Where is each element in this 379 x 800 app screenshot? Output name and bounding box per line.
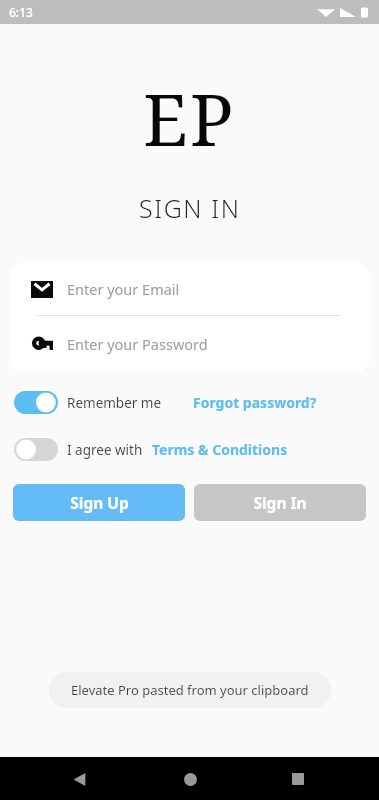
button[interactable]: Remember me toggle, on: [14, 391, 58, 414]
staticText: Terms & Conditions: [152, 440, 288, 459]
staticText: EP: [143, 69, 236, 167]
button[interactable]: Terms & Conditions: [152, 436, 288, 463]
button[interactable]: Forgot password?: [193, 389, 317, 416]
staticText: Remember me: [67, 394, 162, 412]
button[interactable]: Enter your Password: [10, 316, 369, 372]
staticText: Forgot password?: [193, 393, 317, 412]
staticText: Sign Up: [70, 492, 129, 513]
staticText: Enter your Email: [67, 279, 180, 299]
button[interactable]: Recent apps: [281, 762, 315, 796]
button[interactable]: I agree toggle, off: [14, 438, 58, 461]
button[interactable]: Sign Up: [13, 484, 185, 521]
button[interactable]: Sign In: [194, 484, 366, 521]
button[interactable]: Home: [173, 762, 207, 796]
button[interactable]: Enter your Email: [10, 263, 369, 315]
staticText: I agree with: [67, 441, 143, 459]
button[interactable]: Back: [62, 762, 96, 796]
staticText: Enter your Password: [67, 334, 208, 354]
staticText: Elevate Pro pasted from your clipboard: [71, 681, 309, 699]
staticText: SIGN IN: [139, 191, 241, 225]
staticText: Sign In: [253, 492, 307, 513]
staticText: 6:13: [9, 4, 33, 20]
